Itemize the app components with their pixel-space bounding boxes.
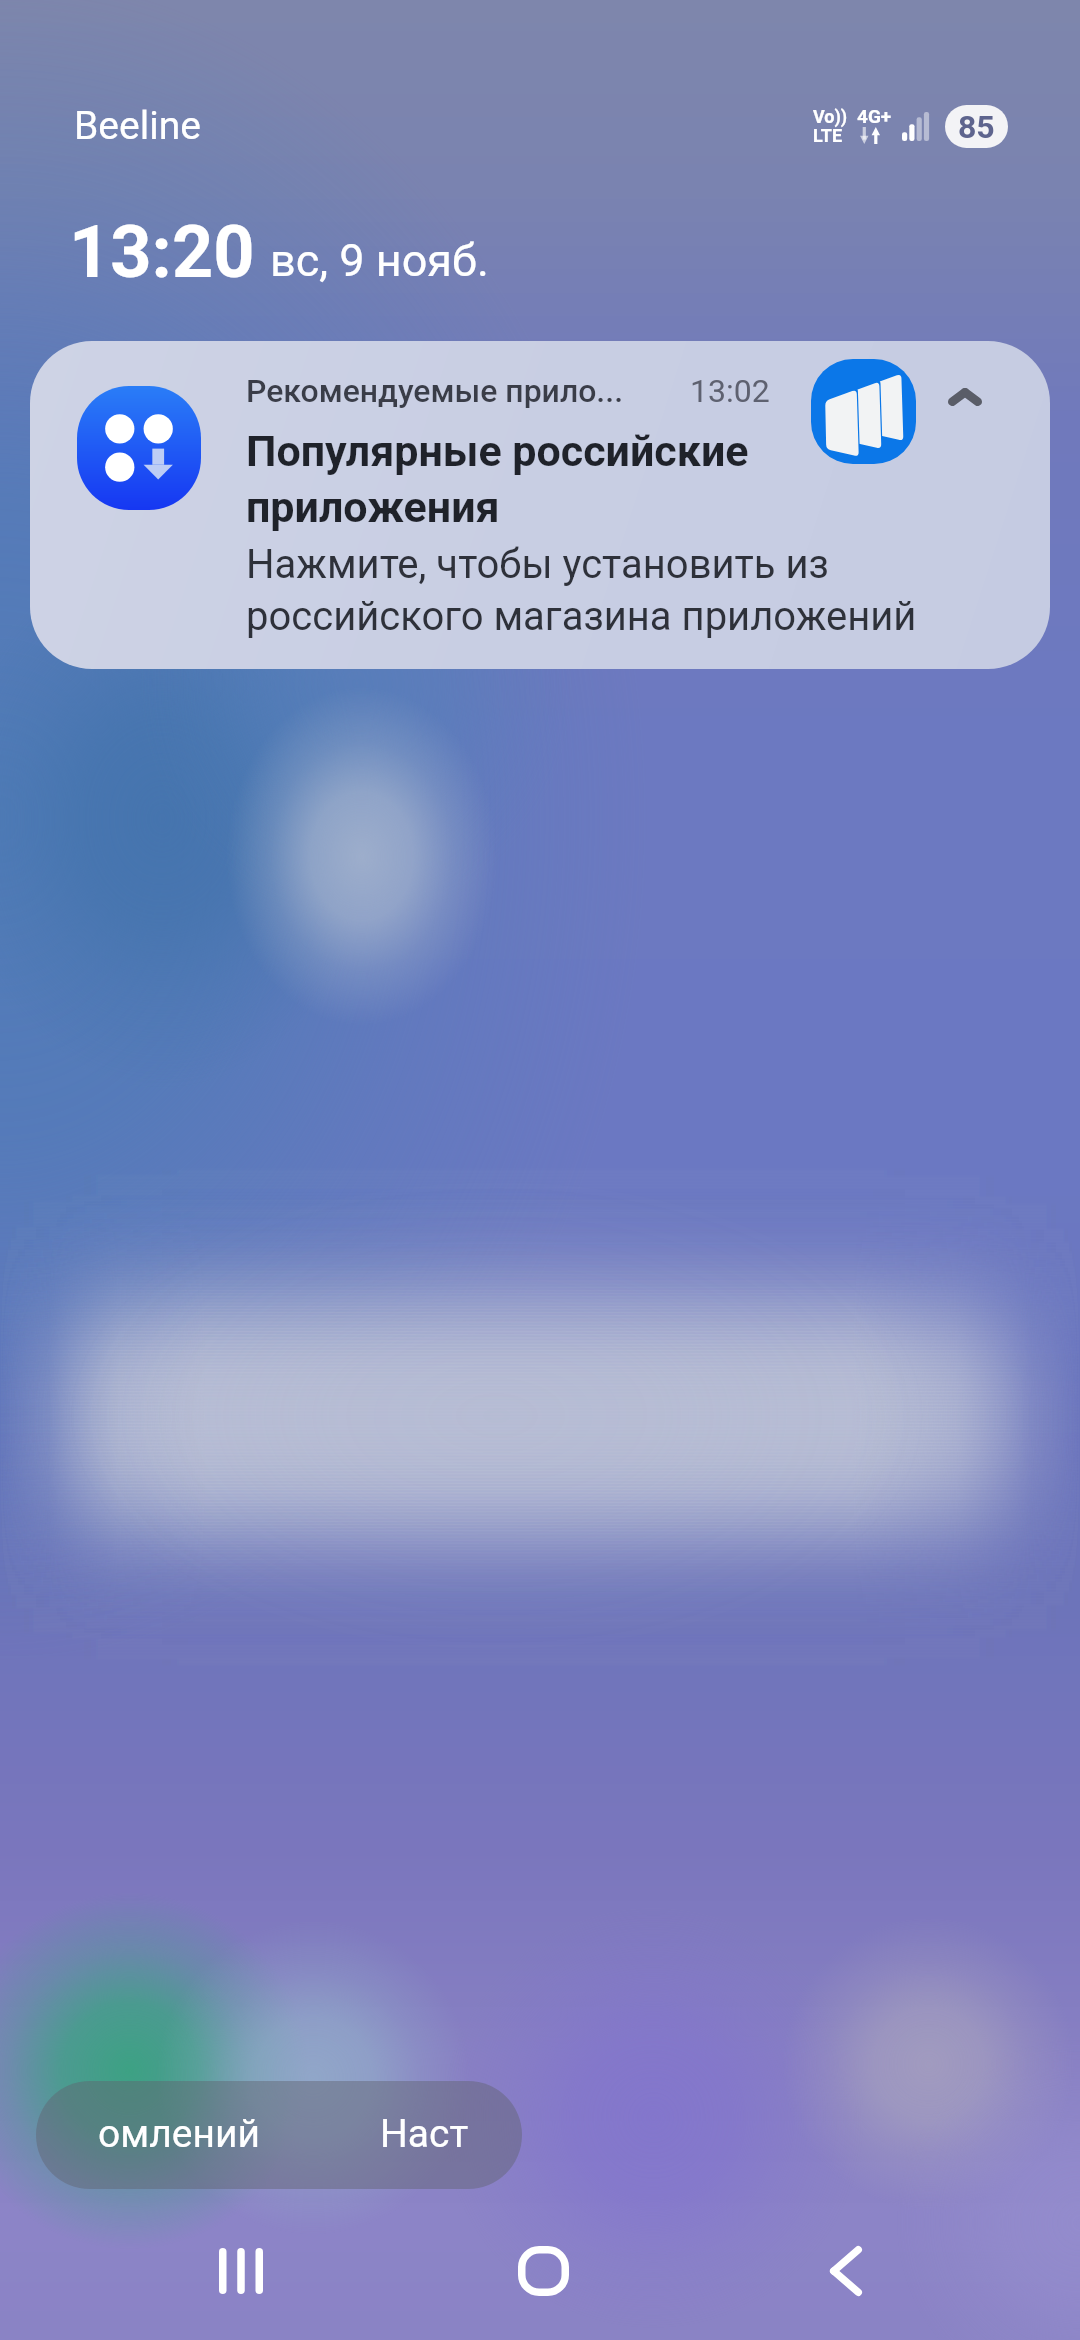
staticText: 85: [958, 108, 995, 146]
button[interactable]: Recent apps: [181, 2212, 301, 2330]
button[interactable]: омлений: [36, 2081, 522, 2189]
staticText: Наст: [380, 2111, 469, 2157]
staticText: 13:20: [69, 210, 255, 294]
button[interactable]: Home: [483, 2212, 603, 2330]
staticText: Vo)): [813, 106, 848, 127]
staticText: 4G+: [857, 105, 892, 127]
button[interactable]: Рекомендуемые прило...: [30, 341, 1050, 669]
staticText: LTE: [813, 125, 843, 146]
button[interactable]: Collapse notification: [930, 362, 1000, 432]
staticText: Популярные российские приложения: [246, 426, 749, 533]
staticText: Нажмите, чтобы установить из российского…: [246, 541, 917, 640]
staticText: Рекомендуемые прило...: [246, 372, 624, 410]
staticText: 13:02: [690, 372, 770, 410]
staticText: Beeline: [74, 103, 201, 149]
staticText: омлений: [98, 2111, 260, 2157]
staticText: вс, 9 нояб.: [270, 234, 489, 287]
button[interactable]: Back: [786, 2212, 906, 2330]
